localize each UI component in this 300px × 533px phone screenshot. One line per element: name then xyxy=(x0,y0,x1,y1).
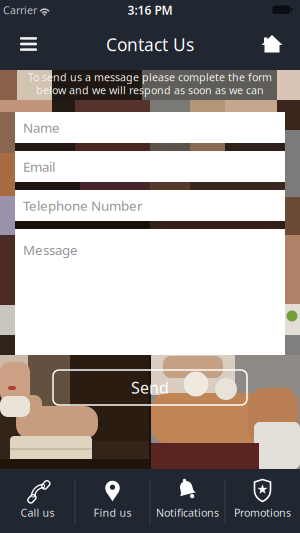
button[interactable]: Find us xyxy=(75,469,150,533)
staticText: Carrier xyxy=(3,3,37,17)
staticText: Email xyxy=(23,158,55,175)
button[interactable]: Call us xyxy=(0,469,75,533)
staticText: Call us xyxy=(20,505,54,520)
button[interactable]: Home xyxy=(255,29,289,59)
staticText: Promotions xyxy=(234,505,291,520)
staticText: Notifications xyxy=(156,505,219,520)
staticText: Name xyxy=(23,119,60,136)
button[interactable]: Send xyxy=(53,370,247,405)
staticText: 3:16 PM xyxy=(127,2,172,18)
button[interactable]: Notifications xyxy=(150,469,225,533)
staticText: Find us xyxy=(93,505,131,520)
staticText: To send us a message please complete the… xyxy=(28,70,272,84)
staticText: Telephone Number xyxy=(23,197,143,214)
staticText: Message xyxy=(23,241,78,259)
staticText: below and we will respond as soon as we … xyxy=(36,83,264,97)
button[interactable]: Promotions xyxy=(225,469,300,533)
staticText: Send xyxy=(131,377,169,398)
button[interactable]: Menu xyxy=(11,29,45,59)
staticText: Contact Us xyxy=(106,33,194,56)
